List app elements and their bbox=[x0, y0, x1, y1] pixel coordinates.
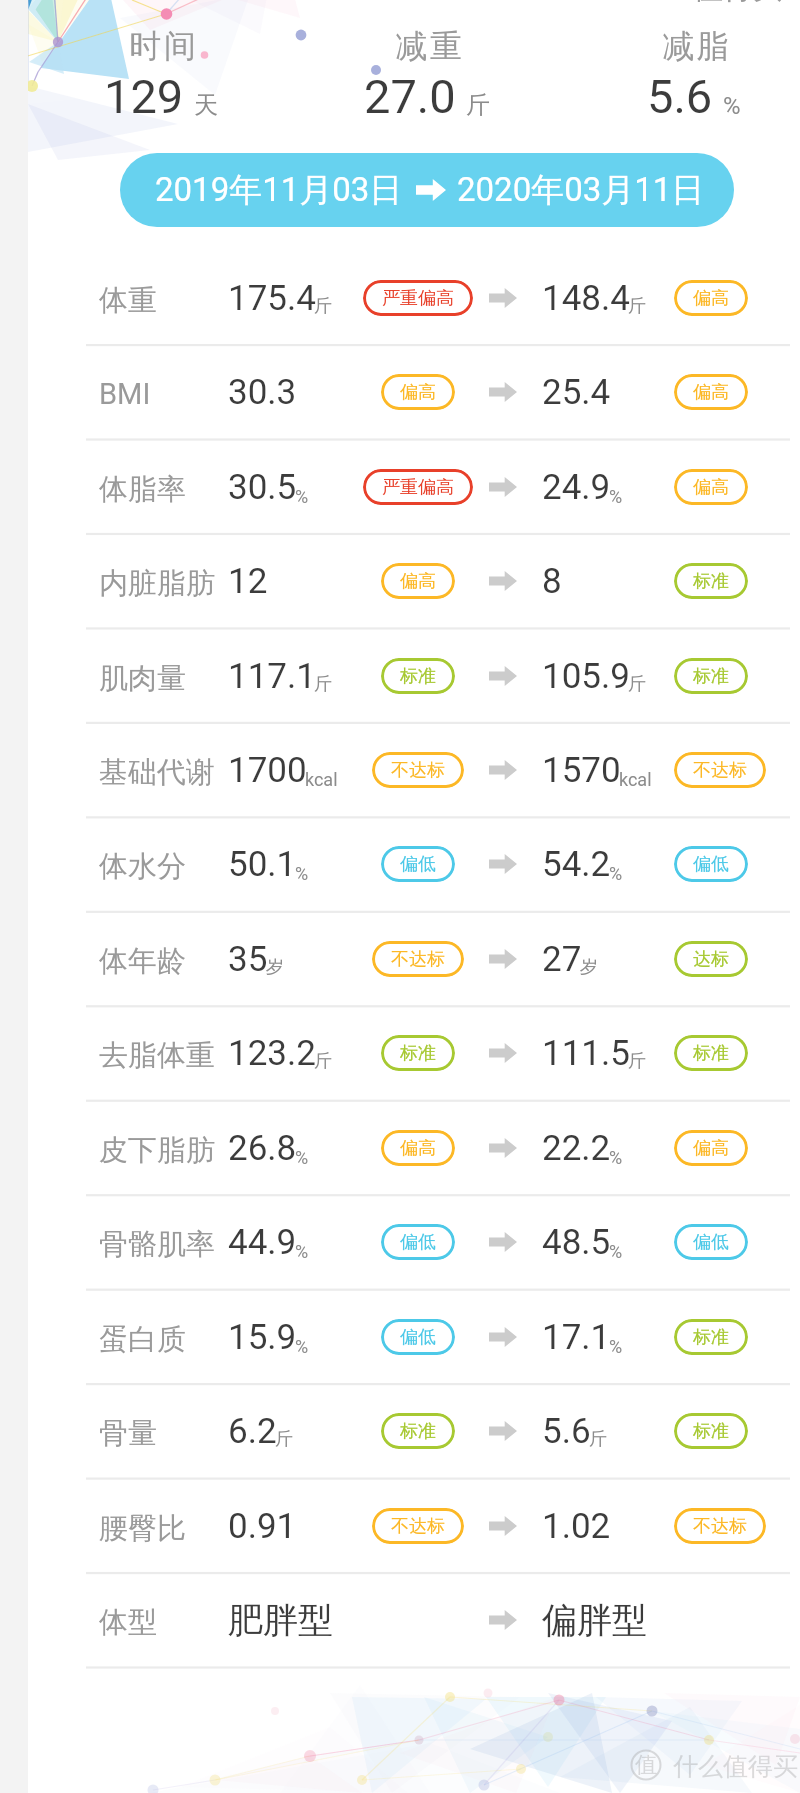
button[interactable]: 不达标 bbox=[674, 752, 766, 788]
staticText: 2019年11月03日 bbox=[155, 169, 403, 211]
staticText: % bbox=[609, 863, 623, 884]
staticText: 1700 bbox=[228, 750, 307, 791]
staticText: 129 bbox=[104, 69, 184, 124]
button[interactable]: 体重 bbox=[0, 251, 800, 345]
staticText: 蛋白质 bbox=[99, 1321, 186, 1358]
button[interactable]: 偏高 bbox=[381, 1130, 455, 1166]
staticText: 骨量 bbox=[99, 1415, 157, 1452]
staticText: 44.9 bbox=[228, 1222, 297, 1263]
button[interactable]: 偏高 bbox=[674, 280, 748, 316]
staticText: 时间 bbox=[128, 26, 197, 66]
button[interactable]: 偏高 bbox=[674, 469, 748, 505]
staticText: 117.1 bbox=[228, 656, 316, 697]
button[interactable]: 骨骼肌率 bbox=[0, 1195, 800, 1289]
staticText: 基础代谢 bbox=[99, 754, 215, 791]
button[interactable]: 严重偏高 bbox=[363, 280, 473, 316]
button[interactable]: 体水分 bbox=[0, 817, 800, 911]
staticText: 不达标 bbox=[693, 1515, 747, 1538]
button[interactable]: 标准 bbox=[674, 1413, 748, 1449]
button[interactable]: 偏高 bbox=[381, 374, 455, 410]
button[interactable]: 肌肉量 bbox=[0, 629, 800, 723]
button[interactable]: 标准 bbox=[674, 1319, 748, 1355]
button[interactable]: 偏低 bbox=[381, 1319, 455, 1355]
button[interactable]: 不达标 bbox=[674, 1508, 766, 1544]
button[interactable]: 骨量 bbox=[0, 1384, 800, 1478]
staticText: % bbox=[609, 1147, 623, 1168]
button[interactable]: 不达标 bbox=[372, 752, 464, 788]
staticText: 50.1 bbox=[228, 844, 297, 885]
staticText: % bbox=[295, 486, 309, 507]
staticText: 2020年03月11日 bbox=[457, 169, 705, 211]
staticText: 标准 bbox=[693, 1326, 729, 1349]
button[interactable]: 偏低 bbox=[381, 846, 455, 882]
staticText: 岁 bbox=[266, 956, 284, 979]
staticText: % bbox=[609, 1336, 623, 1357]
button[interactable]: 偏高 bbox=[381, 563, 455, 599]
staticText: 偏高 bbox=[400, 1137, 436, 1160]
staticText: 标准 bbox=[400, 665, 436, 688]
button[interactable]: 皮下脂肪 bbox=[0, 1101, 800, 1195]
button[interactable]: 严重偏高 bbox=[363, 469, 473, 505]
button[interactable]: 偏低 bbox=[674, 846, 748, 882]
button[interactable]: 标准 bbox=[674, 658, 748, 694]
button[interactable]: 去脂体重 bbox=[0, 1006, 800, 1100]
button[interactable]: 不达标 bbox=[372, 941, 464, 977]
button[interactable]: 标准 bbox=[381, 658, 455, 694]
button[interactable]: 标准 bbox=[381, 1413, 455, 1449]
button[interactable]: 偏高 bbox=[674, 374, 748, 410]
staticText: 标准 bbox=[693, 570, 729, 593]
staticText: 偏高 bbox=[693, 287, 729, 310]
staticText: 8 bbox=[542, 561, 562, 602]
staticText: % bbox=[295, 1241, 309, 1262]
staticText: 去脂体重 bbox=[99, 1037, 215, 1074]
button[interactable]: 蛋白质 bbox=[0, 1290, 800, 1384]
staticText: 岁 bbox=[580, 956, 598, 979]
staticText: 6.2 bbox=[228, 1411, 277, 1452]
staticText: 骨骼肌率 bbox=[99, 1226, 215, 1263]
button[interactable]: 不达标 bbox=[372, 1508, 464, 1544]
button[interactable]: 体年龄 bbox=[0, 912, 800, 1006]
button[interactable]: 体型 bbox=[0, 1573, 800, 1667]
staticText: 体重 bbox=[99, 282, 157, 319]
staticText: 1570 bbox=[542, 750, 621, 791]
staticText: 斤 bbox=[314, 673, 332, 696]
staticText: 不达标 bbox=[391, 948, 445, 971]
staticText: 不达标 bbox=[391, 1515, 445, 1538]
button[interactable]: 标准 bbox=[381, 1035, 455, 1071]
button[interactable]: 体脂率 bbox=[0, 440, 800, 534]
staticText: 偏高 bbox=[400, 570, 436, 593]
staticText: 偏低 bbox=[400, 1231, 436, 1254]
button[interactable]: 标准 bbox=[674, 1035, 748, 1071]
button[interactable]: 达标 bbox=[674, 941, 748, 977]
button[interactable]: BMI bbox=[0, 345, 800, 439]
staticText: 标准 bbox=[400, 1420, 436, 1443]
staticText: 105.9 bbox=[542, 656, 630, 697]
button[interactable]: 2019年11月03日 bbox=[120, 153, 734, 227]
button[interactable]: 内脏脂肪 bbox=[0, 534, 800, 628]
staticText: kcal bbox=[619, 769, 652, 790]
staticText: 达标 bbox=[693, 948, 729, 971]
staticText: 27.0 bbox=[364, 69, 456, 124]
button[interactable]: 标准 bbox=[674, 563, 748, 599]
staticText: 值 bbox=[635, 1751, 657, 1779]
button[interactable]: 偏高 bbox=[674, 1130, 748, 1166]
staticText: 5.6 bbox=[647, 69, 713, 124]
staticText: 内脏脂肪 bbox=[99, 565, 215, 602]
staticText: 偏高 bbox=[693, 1137, 729, 1160]
staticText: 偏低 bbox=[693, 1231, 729, 1254]
staticText: 123.2 bbox=[228, 1033, 316, 1074]
staticText: 偏低 bbox=[400, 1326, 436, 1349]
staticText: 26.8 bbox=[228, 1128, 297, 1169]
button[interactable]: 腰臀比 bbox=[0, 1479, 800, 1573]
button[interactable]: 基础代谢 bbox=[0, 723, 800, 817]
button[interactable]: 偏低 bbox=[674, 1224, 748, 1260]
button[interactable]: 偏低 bbox=[381, 1224, 455, 1260]
staticText: 12 bbox=[228, 561, 268, 602]
staticText: 体型 bbox=[99, 1604, 157, 1641]
staticText: 减脂 bbox=[661, 26, 730, 66]
staticText: 24.9 bbox=[542, 467, 611, 508]
staticText: 偏高 bbox=[693, 476, 729, 499]
staticText: 27 bbox=[542, 939, 582, 980]
staticText: 17.1 bbox=[542, 1317, 611, 1358]
staticText: 斤 bbox=[275, 1428, 293, 1451]
